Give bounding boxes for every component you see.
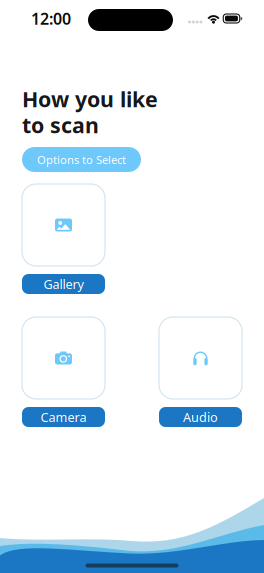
staticText: How you like [22, 84, 158, 114]
button[interactable]: Gallery [22, 274, 105, 294]
staticText: to scan [22, 110, 99, 140]
button[interactable]: Camera [22, 317, 105, 399]
button[interactable]: Camera [22, 407, 105, 427]
staticText: Options to Select [37, 152, 126, 167]
button[interactable]: Audio [159, 317, 242, 399]
staticText: Gallery [43, 275, 83, 293]
staticText: 12:00 [31, 8, 71, 29]
button[interactable]: Audio [159, 407, 242, 427]
button[interactable]: Gallery [22, 184, 105, 266]
staticText: Camera [40, 408, 86, 426]
staticText: Audio [183, 408, 218, 426]
button[interactable]: Options to Select [22, 147, 141, 172]
